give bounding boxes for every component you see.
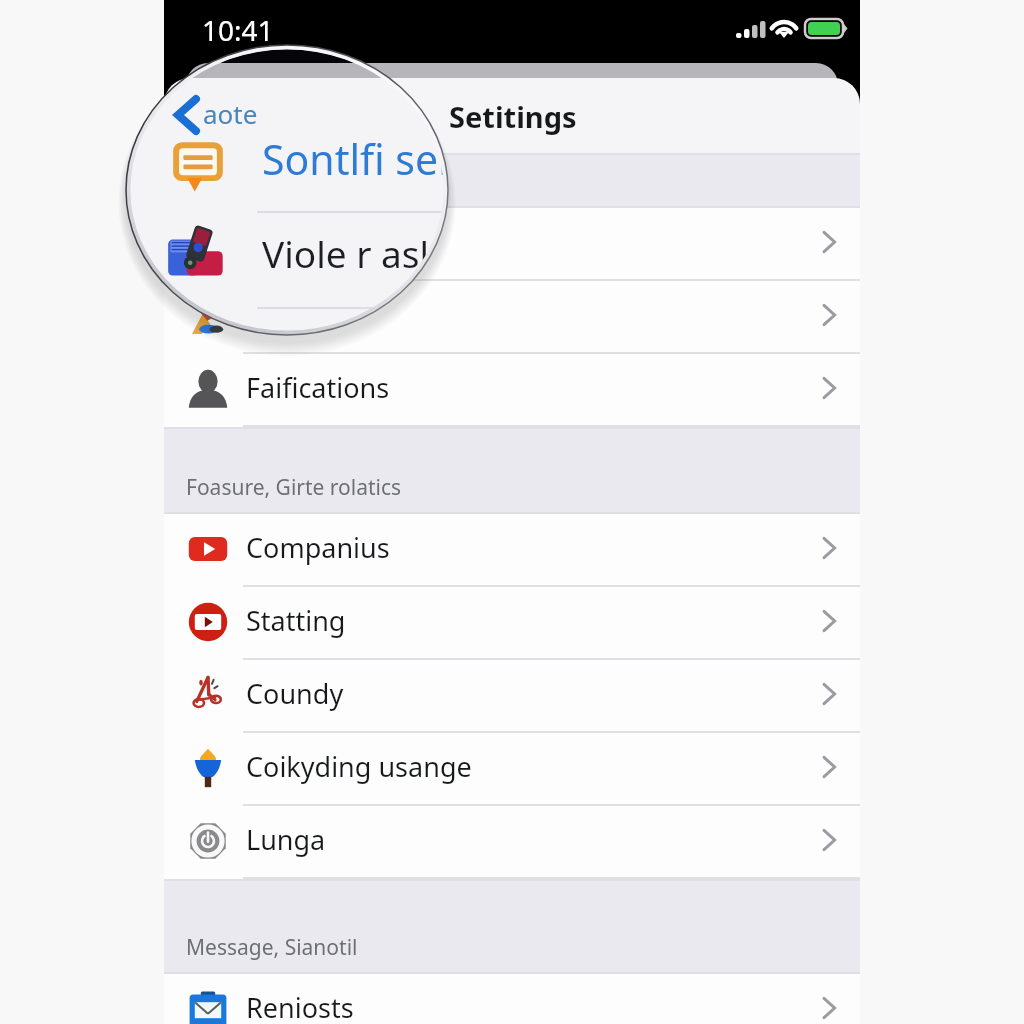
- staticText: Foasure, Girte rolatics: [186, 473, 402, 502]
- button[interactable]: Companius: [164, 514, 860, 585]
- staticText: 10:41: [202, 11, 274, 49]
- staticText: Reniosts: [246, 989, 354, 1024]
- staticText: Setitings: [449, 97, 577, 136]
- button[interactable]: Lunga: [164, 806, 860, 877]
- staticText: Coikyding usange: [246, 748, 472, 785]
- staticText: Viole r ask: [262, 228, 440, 278]
- button[interactable]: Coundy: [164, 660, 860, 731]
- staticText: Coundy: [246, 675, 344, 712]
- staticText: Lunga: [246, 821, 326, 858]
- button[interactable]: Sontlfi ser: [164, 208, 860, 279]
- button[interactable]: Viole r ask: [164, 281, 860, 352]
- button[interactable]: Statting: [164, 587, 860, 658]
- staticText: Sontlfi ser: [262, 131, 444, 187]
- staticText: Companius: [246, 529, 390, 566]
- staticText: aote: [203, 96, 258, 131]
- staticText: Message, Sianotil: [186, 933, 358, 962]
- staticText: Faifications: [246, 369, 390, 406]
- staticText: Statting: [246, 602, 346, 639]
- button[interactable]: Faifications: [164, 354, 860, 425]
- button[interactable]: Magnifier: [104, 23, 470, 357]
- button[interactable]: Coikyding usange: [164, 733, 860, 804]
- button[interactable]: Reniosts: [164, 974, 860, 1024]
- button[interactable]: Back: [170, 89, 260, 139]
